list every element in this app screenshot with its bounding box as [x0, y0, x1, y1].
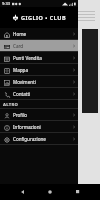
staticText: Home: [13, 31, 27, 37]
staticText: Profilo: [13, 112, 28, 118]
staticText: Contatti: [13, 91, 31, 97]
staticText: Card: [13, 43, 24, 49]
button[interactable]: Home: [45, 187, 55, 197]
button[interactable]: Mappa: [0, 64, 78, 76]
staticText: Punti Vendita: [13, 55, 42, 61]
staticText: Mappa: [13, 67, 28, 73]
button[interactable]: Profilo: [0, 109, 78, 121]
staticText: GIGLIO • CLUB: [21, 14, 67, 21]
button[interactable]: Punti Vendita: [0, 52, 78, 64]
button[interactable]: Recent apps: [73, 187, 83, 197]
button[interactable]: Back: [18, 187, 28, 197]
staticText: Movimenti: [13, 79, 36, 85]
staticText: Configurazione: [13, 136, 46, 142]
button[interactable]: Informazioni: [0, 121, 78, 133]
button[interactable]: Configurazione: [0, 133, 78, 145]
button[interactable]: Home: [0, 28, 78, 40]
button[interactable]: Contatti: [0, 88, 78, 100]
staticText: 9:33: [2, 1, 10, 6]
staticText: ALTRO: [3, 102, 19, 108]
button[interactable]: Card: [0, 40, 78, 52]
staticText: Informazioni: [13, 124, 41, 130]
button[interactable]: Movimenti: [0, 76, 78, 88]
